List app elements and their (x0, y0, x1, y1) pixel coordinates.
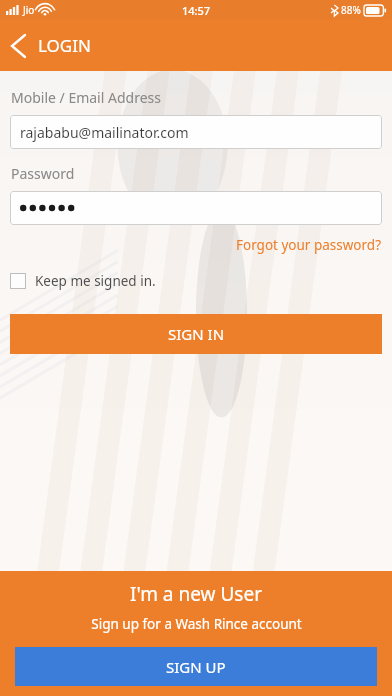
button[interactable]: rajababu@mailinator.com (10, 115, 382, 149)
button[interactable] (10, 191, 382, 225)
staticText: 88% (341, 3, 361, 17)
staticText: Jio (23, 3, 35, 17)
staticText: Password (11, 164, 75, 183)
staticText: Sign up for a Wash Rince account (91, 615, 302, 633)
button[interactable]: Keep me signed in. (10, 269, 166, 293)
staticText: I'm a new User (130, 581, 262, 607)
button[interactable]: Back (0, 26, 105, 65)
staticText: rajababu@mailinator.com (20, 123, 189, 142)
button[interactable]: Forgot your password? (236, 234, 392, 256)
button[interactable]: SIGN UP (15, 647, 377, 686)
staticText: Mobile / Email Address (11, 88, 161, 107)
staticText: SIGN UP (166, 657, 226, 677)
staticText: Keep me signed in. (35, 272, 156, 290)
staticText: SIGN IN (168, 324, 225, 344)
staticText: LOGIN (38, 34, 91, 57)
button[interactable]: SIGN IN (10, 314, 382, 354)
staticText: 14:57 (182, 3, 211, 18)
other: Back (12, 35, 25, 57)
